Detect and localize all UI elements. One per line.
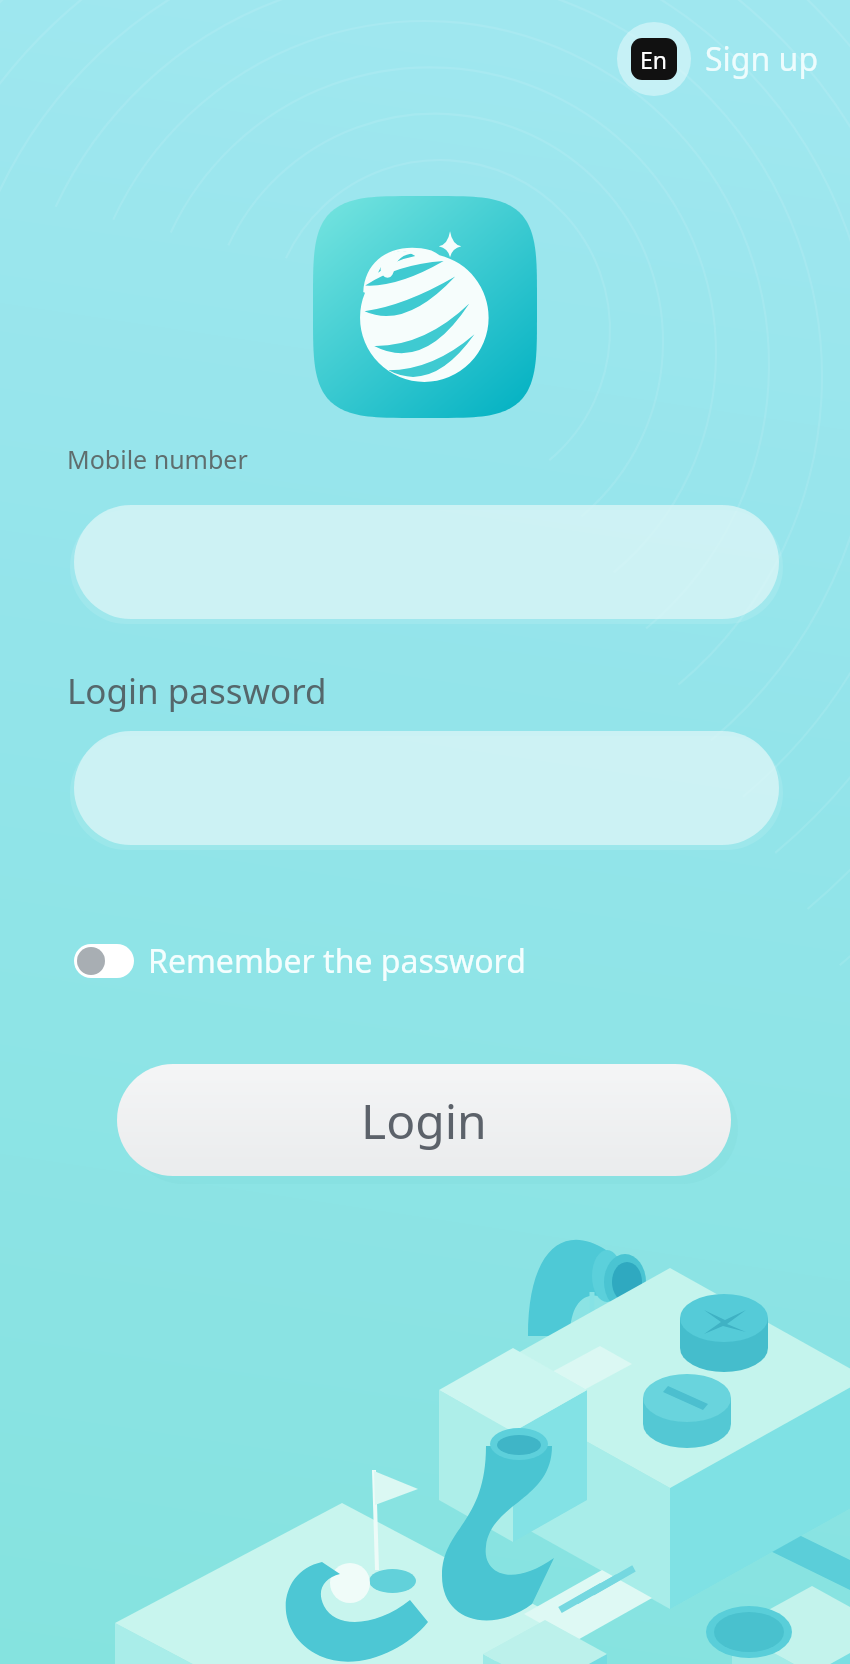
button[interactable]: Remember the password <box>72 935 528 987</box>
staticText: Mobile number <box>67 442 248 476</box>
staticText: Remember the password <box>148 939 526 983</box>
button[interactable] <box>74 505 779 619</box>
button[interactable] <box>74 731 779 845</box>
staticText: En <box>640 44 668 75</box>
button[interactable]: Change language, English <box>617 22 691 96</box>
staticText: Sign up <box>705 37 819 81</box>
staticText: Login <box>361 1088 487 1153</box>
button[interactable]: Login <box>117 1064 731 1176</box>
button[interactable]: Sign up <box>699 29 825 89</box>
staticText: Login password <box>67 667 327 715</box>
